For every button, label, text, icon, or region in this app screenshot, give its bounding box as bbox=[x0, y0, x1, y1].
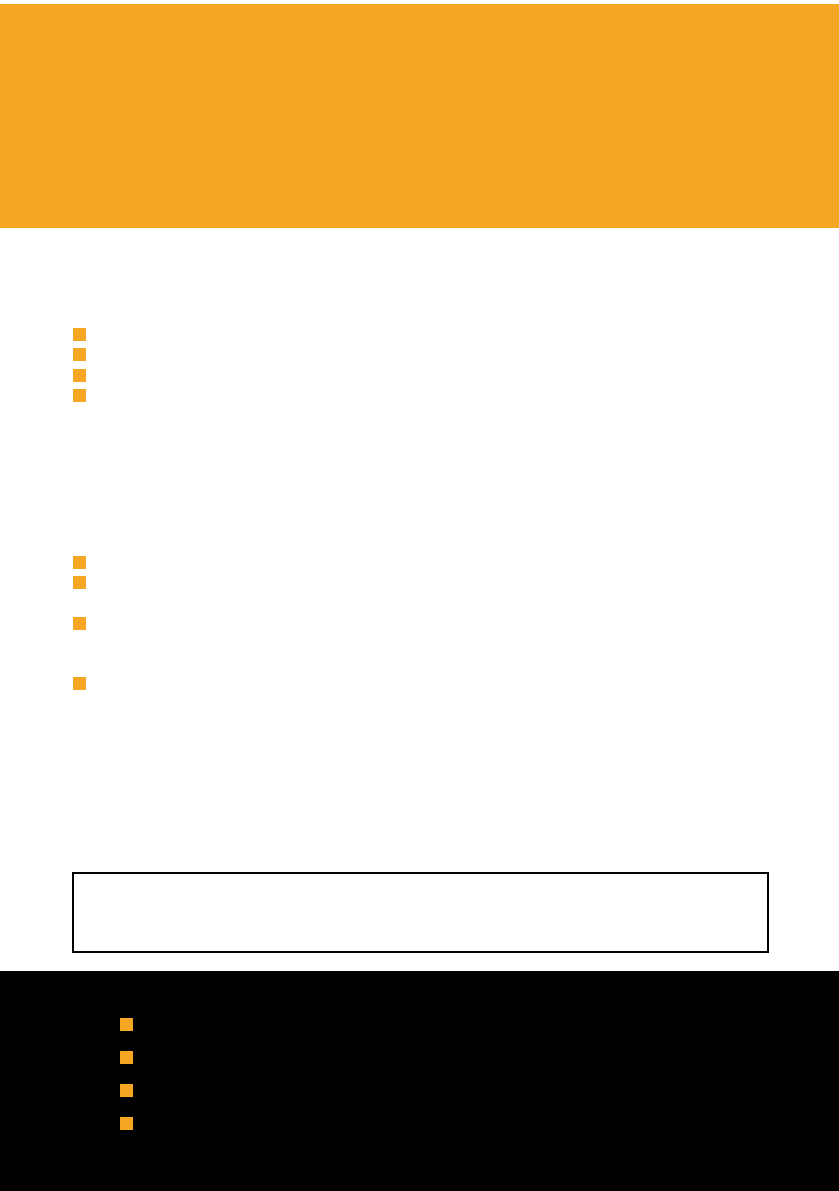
button[interactable] bbox=[72, 872, 769, 953]
